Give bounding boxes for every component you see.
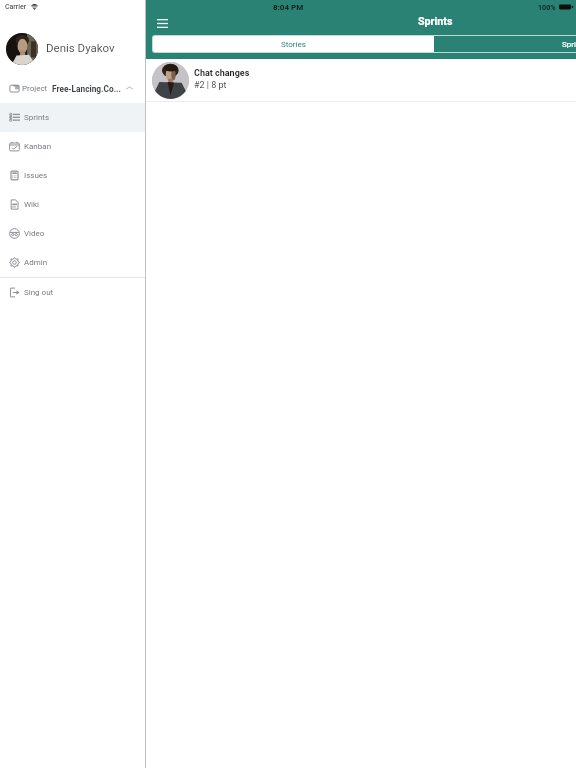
button[interactable]: Sing out: [0, 278, 145, 307]
staticText: Sing out: [24, 288, 54, 297]
staticText: #2 | 8 pt: [194, 80, 227, 91]
staticText: Wiki: [24, 200, 40, 209]
button[interactable]: Issues: [0, 161, 145, 190]
button[interactable]: Denis Dyakov: [0, 0, 145, 74]
button[interactable]: Stories: [153, 36, 434, 52]
staticText: Sprints: [24, 113, 50, 122]
button[interactable]: Sprints: [434, 36, 576, 52]
staticText: Chat changes: [194, 68, 250, 79]
staticText: Sprints: [418, 15, 453, 28]
staticText: 100%: [538, 3, 556, 11]
staticText: Denis Dyakov: [46, 41, 115, 54]
button[interactable]: Wiki: [0, 190, 145, 219]
staticText: Sprints: [562, 40, 576, 49]
button[interactable]: Video: [0, 219, 145, 248]
staticText: Free-Lancing.Co...: [52, 84, 121, 94]
button[interactable]: Sprints: [0, 103, 145, 132]
staticText: Admin: [24, 258, 48, 267]
staticText: Video: [24, 229, 45, 238]
staticText: 8:04 PM: [273, 3, 304, 12]
staticText: Project: [22, 84, 48, 93]
button[interactable]: Admin: [0, 248, 145, 277]
button[interactable]: Project: [0, 74, 145, 103]
staticText: Stories: [281, 40, 306, 49]
button[interactable]: Chat changes: [146, 59, 576, 101]
button[interactable]: Menu: [157, 19, 168, 28]
staticText: Issues: [24, 171, 48, 180]
staticText: Kanban: [24, 142, 52, 151]
staticText: Carrier: [5, 3, 27, 11]
button[interactable]: Kanban: [0, 132, 145, 161]
